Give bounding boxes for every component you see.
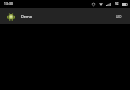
other: Mobile signal [106,3,111,6]
staticText: 13:30 [4,2,14,6]
staticText: LED [116,15,122,19]
other: VPN active [92,3,95,6]
staticText: Demo [21,14,33,19]
other: Wi-Fi signal [99,3,103,6]
other: Battery 92 percent [122,3,128,6]
staticText: 92 [115,2,119,6]
button[interactable]: LED [108,10,130,23]
button[interactable]: Demo [0,8,39,24]
